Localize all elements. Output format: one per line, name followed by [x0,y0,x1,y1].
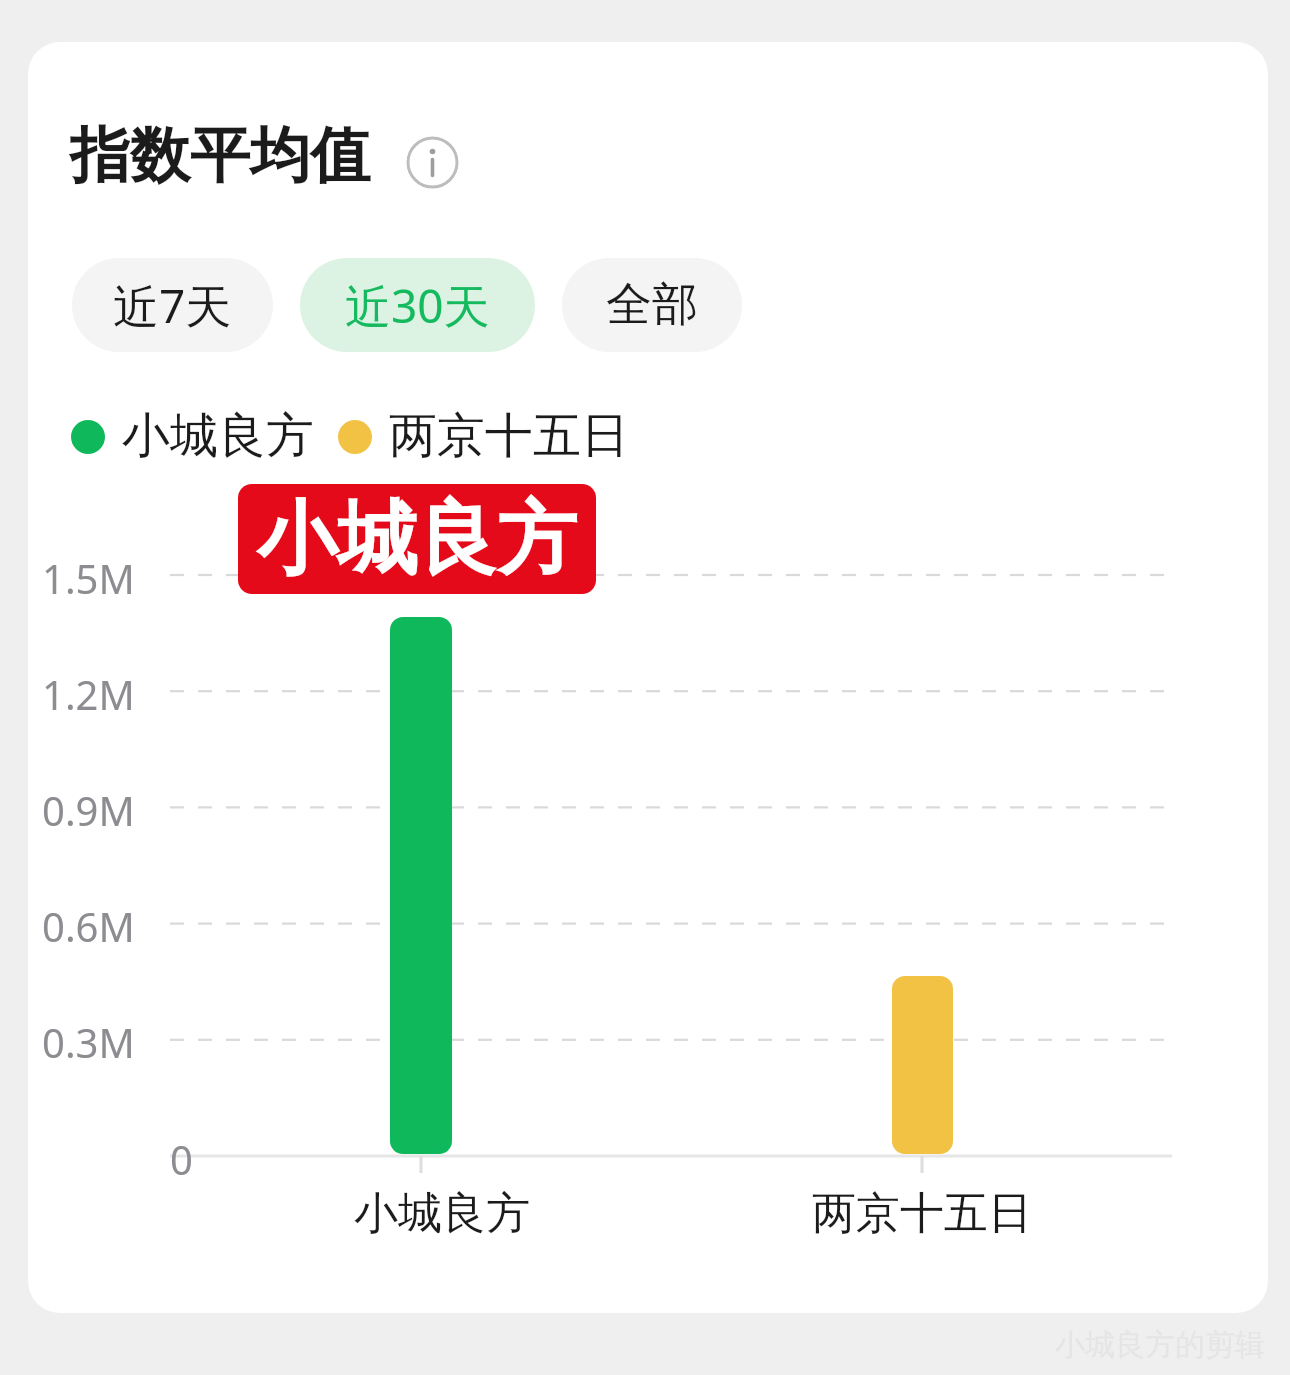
button[interactable]: 说明 [406,136,459,189]
staticText: 0.6M [42,899,135,947]
staticText: 全部 [606,276,698,334]
staticText: 近7天 [113,274,232,337]
staticText: 小城良方 [122,406,314,466]
staticText: 近30天 [345,274,490,337]
button[interactable]: 近30天 [300,258,535,352]
button[interactable]: 全部 [562,258,742,352]
staticText: 两京十五日 [389,406,629,466]
staticText: 0.9M [42,783,135,831]
staticText: 两京十五日 [812,1186,1032,1241]
staticText: 小城良方的剪辑 [1055,1326,1265,1364]
staticText: 小城良方 [354,1186,530,1241]
staticText: 1.5M [42,551,135,599]
staticText: 指数平均值 [70,118,370,194]
staticText: 0 [170,1132,193,1180]
staticText: 0.3M [42,1015,135,1063]
button[interactable]: 近7天 [72,258,273,352]
staticText: 1.2M [42,667,135,715]
staticText: 小城良方 [257,489,577,590]
